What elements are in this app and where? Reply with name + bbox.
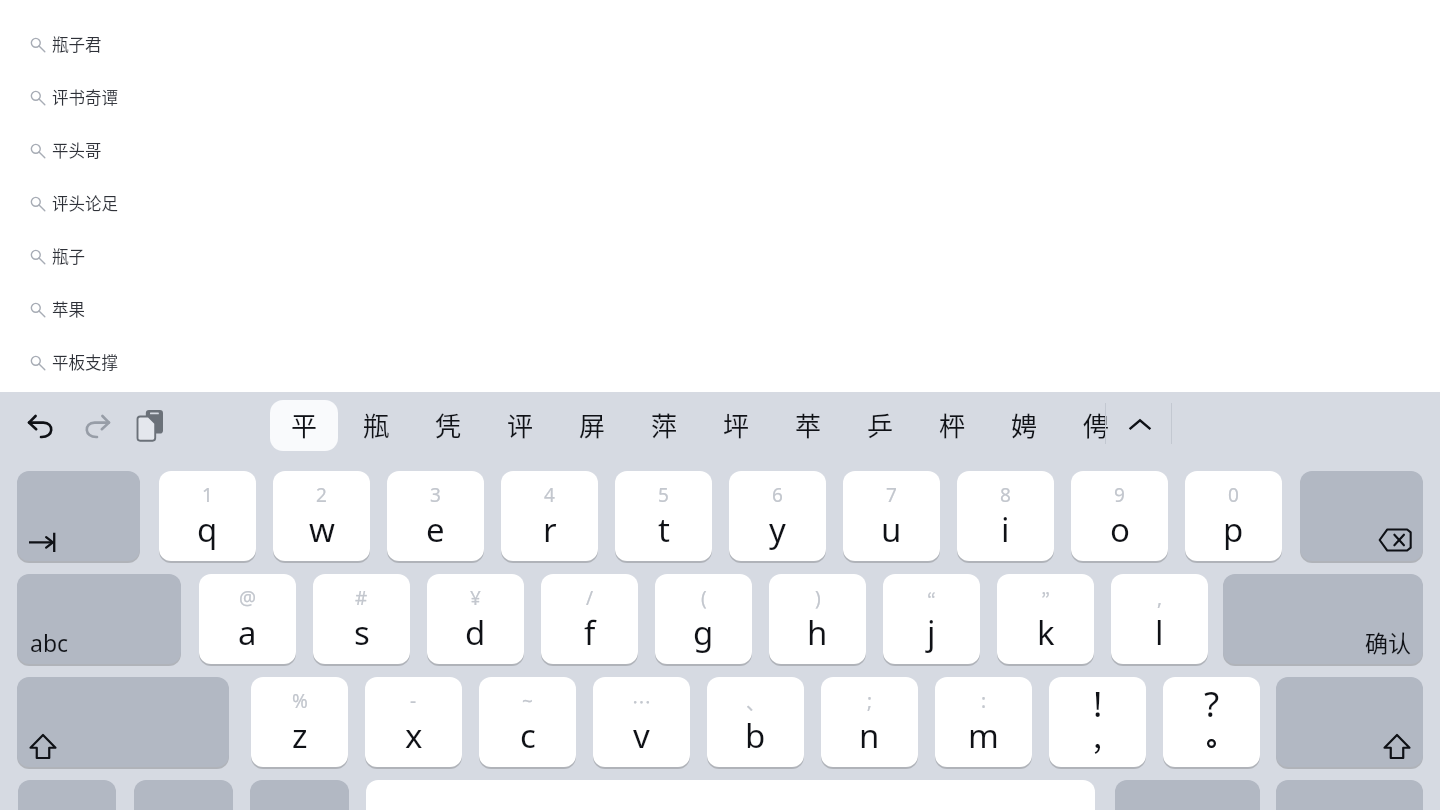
button[interactable]: 乒 <box>846 400 914 451</box>
button[interactable]: 2 <box>273 471 370 561</box>
staticText: y <box>769 507 786 552</box>
staticText: 萍 <box>651 406 678 444</box>
staticText: i <box>1001 507 1010 552</box>
staticText: 5 <box>658 482 669 508</box>
button[interactable]: 屏 <box>558 400 626 451</box>
button[interactable]: 瓶子君 <box>0 18 1440 71</box>
button[interactable]: 坪 <box>702 400 770 451</box>
button[interactable]: 萍 <box>630 400 698 451</box>
staticText: 9 <box>1114 482 1125 508</box>
button[interactable]: 9 <box>1071 471 1168 561</box>
button[interactable]: Emoji <box>1276 780 1423 810</box>
staticText: x <box>405 713 423 758</box>
button[interactable]: … <box>593 677 690 767</box>
button[interactable]: 确认 <box>1223 574 1423 664</box>
staticText: s <box>354 610 370 655</box>
button[interactable]: 6 <box>729 471 826 561</box>
button[interactable]: Backspace <box>1300 471 1423 561</box>
button[interactable]: 娉 <box>990 400 1058 451</box>
button[interactable]: Clipboard <box>130 405 170 445</box>
staticText: / <box>586 585 594 611</box>
staticText: 坪 <box>723 406 750 444</box>
button[interactable]: Period <box>1115 780 1260 810</box>
staticText: 苹果 <box>52 297 85 321</box>
button[interactable]: % <box>251 677 348 767</box>
button[interactable]: , <box>1111 574 1208 664</box>
button[interactable]: - <box>365 677 462 767</box>
button[interactable]: Undo <box>21 405 61 445</box>
button[interactable]: ( <box>655 574 752 664</box>
button[interactable]: ” <box>997 574 1094 664</box>
button[interactable]: ; <box>821 677 918 767</box>
button[interactable]: 、 <box>707 677 804 767</box>
button[interactable]: 平板支撑 <box>0 336 1440 389</box>
button[interactable]: 8 <box>957 471 1054 561</box>
button[interactable]: 苹果 <box>0 283 1440 336</box>
staticText: 俜 <box>1083 406 1110 444</box>
staticText: 平板支撑 <box>52 350 118 374</box>
button[interactable]: 凭 <box>414 400 482 451</box>
staticText: ! <box>1093 680 1103 728</box>
staticText: l <box>1155 610 1164 655</box>
staticText: f <box>584 610 596 655</box>
button[interactable]: ) <box>769 574 866 664</box>
staticText: 评 <box>507 406 534 444</box>
button[interactable]: Shift <box>1276 677 1423 767</box>
staticText: m <box>968 713 999 758</box>
button[interactable]: 评书奇谭 <box>0 71 1440 124</box>
staticText: 评头论足 <box>52 191 118 215</box>
button[interactable]: Tab <box>17 471 140 561</box>
staticText: 1 <box>202 482 213 508</box>
button[interactable]: ~ <box>479 677 576 767</box>
staticText: 瓶 <box>363 406 390 444</box>
staticText: ¥ <box>470 585 481 611</box>
staticText: 平头哥 <box>52 138 102 162</box>
staticText: d <box>465 610 486 655</box>
button[interactable]: abc <box>17 574 181 664</box>
button[interactable]: Redo <box>77 405 117 445</box>
button[interactable]: ? <box>1163 677 1260 767</box>
button[interactable]: 平 <box>270 400 338 451</box>
button[interactable]: 瓶子 <box>0 230 1440 283</box>
button[interactable]: ! <box>1049 677 1146 767</box>
button[interactable]: “ <box>883 574 980 664</box>
button[interactable]: @ <box>199 574 296 664</box>
button[interactable]: 评头论足 <box>0 177 1440 230</box>
staticText: # <box>355 585 368 611</box>
button[interactable]: 枰 <box>918 400 986 451</box>
staticText: 6 <box>772 482 783 508</box>
button[interactable]: # <box>313 574 410 664</box>
staticText: 3 <box>430 482 441 508</box>
staticText: 0 <box>1228 482 1239 508</box>
button[interactable]: 7 <box>843 471 940 561</box>
button[interactable]: Symbols <box>18 780 116 810</box>
button[interactable]: 平头哥 <box>0 124 1440 177</box>
button[interactable]: 3 <box>387 471 484 561</box>
button[interactable]: Comma <box>250 780 349 810</box>
staticText: n <box>859 713 880 758</box>
button[interactable]: 评 <box>486 400 554 451</box>
button[interactable]: 俜 <box>1062 400 1130 451</box>
button[interactable]: ¥ <box>427 574 524 664</box>
button[interactable]: / <box>541 574 638 664</box>
staticText: ) <box>815 585 821 611</box>
button[interactable]: : <box>935 677 1032 767</box>
staticText: “ <box>927 585 937 613</box>
button[interactable]: 1 <box>159 471 256 561</box>
button[interactable]: 0 <box>1185 471 1282 561</box>
button[interactable]: 瓶 <box>342 400 410 451</box>
staticText: 平 <box>291 406 318 444</box>
staticText: ” <box>1041 585 1051 613</box>
button[interactable]: Expand candidates <box>1117 400 1163 451</box>
button[interactable]: 5 <box>615 471 712 561</box>
staticText: … <box>632 688 652 716</box>
button[interactable]: Language <box>134 780 233 810</box>
staticText: v <box>633 713 650 758</box>
button[interactable]: 苹 <box>774 400 842 451</box>
button[interactable]: 4 <box>501 471 598 561</box>
staticText: z <box>292 713 308 758</box>
staticText: 娉 <box>1011 406 1038 444</box>
staticText: k <box>1037 610 1055 655</box>
button[interactable]: Shift <box>17 677 229 767</box>
